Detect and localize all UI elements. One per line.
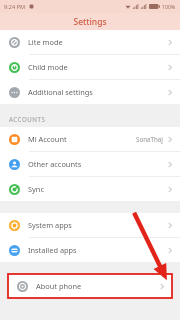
button[interactable]: Installed apps [0,238,180,262]
other: Annotation arrow pointing to About phone [0,0,180,320]
staticText: Installed apps [28,245,77,255]
staticText: Other accounts [28,159,82,169]
button[interactable]: Mi Account [0,127,180,151]
staticText: 9:24 PM [4,3,26,11]
button[interactable]: Sync [0,177,180,201]
button[interactable]: Child mode [0,55,180,79]
staticText: Lite mode [28,37,63,47]
button[interactable]: Other accounts [0,152,180,176]
staticText: System apps [28,220,72,230]
staticText: About phone [36,281,82,291]
staticText: Mi Account [28,134,67,144]
staticText: ACCOUNTS [9,115,46,123]
staticText: 100% [162,3,176,10]
button[interactable]: About phone [8,274,172,298]
staticText: Child mode [28,62,68,72]
button[interactable]: System apps [0,213,180,237]
staticText: Sync [28,184,44,194]
button[interactable]: Additional settings [0,80,180,104]
staticText: SonaThaj [136,135,163,143]
staticText: Settings [73,16,107,28]
staticText: Additional settings [28,87,93,97]
button[interactable]: Lite mode [0,30,180,54]
